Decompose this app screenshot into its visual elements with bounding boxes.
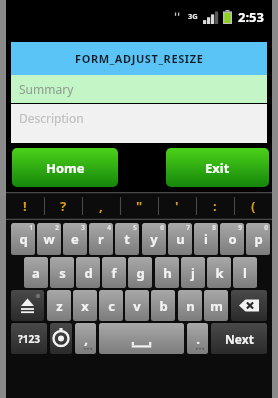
staticText: s [59, 264, 66, 282]
staticText: Home [46, 159, 85, 177]
staticText: Exit [205, 159, 230, 177]
button[interactable]: h [155, 257, 179, 288]
button[interactable]: x [73, 290, 97, 321]
staticText: a [32, 264, 40, 282]
staticText: , [99, 197, 103, 215]
button[interactable]: o [220, 223, 244, 255]
button[interactable]: c [99, 290, 123, 321]
staticText: ? [60, 197, 67, 215]
staticText: 7 [186, 223, 190, 232]
button[interactable]: k [207, 257, 231, 288]
staticText: c [108, 297, 115, 315]
button[interactable]: Exit [166, 148, 269, 187]
button[interactable]: g [128, 257, 152, 288]
staticText: 2 [55, 223, 59, 232]
staticText: i [204, 230, 208, 248]
staticText: u [176, 230, 185, 248]
staticText: 4 [107, 223, 111, 232]
button[interactable]: q [11, 223, 35, 255]
staticText: Description [19, 110, 84, 126]
staticText: 2:53 [238, 8, 264, 26]
button[interactable]: f [102, 257, 126, 288]
staticText: 5 [133, 223, 137, 232]
staticText: h [163, 264, 172, 282]
button[interactable]: e [63, 223, 87, 255]
staticText: l [243, 264, 247, 282]
staticText: o [228, 230, 237, 248]
staticText: g [136, 264, 145, 282]
staticText: 6 [160, 223, 164, 232]
button[interactable]: Summary [11, 75, 267, 103]
button[interactable]: v [125, 290, 149, 321]
staticText: 3G [188, 11, 198, 21]
button[interactable]: z [47, 290, 71, 321]
button[interactable]: Description [11, 104, 267, 143]
staticText: e [71, 230, 79, 248]
staticText: 8 [212, 223, 216, 232]
staticText: Summary [19, 81, 74, 97]
button[interactable]: p [246, 223, 270, 255]
button[interactable]: r [89, 223, 113, 255]
button[interactable]: s [50, 257, 74, 288]
button[interactable]: Space [99, 323, 184, 354]
button[interactable]: a [24, 257, 48, 288]
staticText: ( [251, 197, 256, 215]
staticText: k [215, 264, 224, 282]
staticText: ! [23, 197, 27, 215]
staticText: ?123 [18, 332, 40, 346]
button[interactable]: Backspace [231, 290, 267, 321]
button[interactable]: Home [12, 148, 118, 187]
staticText: b [159, 297, 168, 315]
button[interactable]: m [204, 290, 228, 321]
staticText: w [43, 230, 55, 248]
staticText: n [186, 297, 195, 315]
staticText: . [196, 330, 200, 348]
staticText: p [254, 230, 263, 248]
button[interactable]: ' [158, 192, 196, 220]
button[interactable]: " [120, 192, 158, 220]
staticText: t [124, 230, 130, 248]
button[interactable]: Settings [50, 323, 72, 354]
staticText: q [19, 230, 28, 248]
button[interactable]: ! [6, 192, 44, 220]
staticText: " [136, 197, 143, 215]
staticText: Next [225, 331, 254, 347]
staticText: 1 [29, 223, 33, 232]
button[interactable]: j [181, 257, 205, 288]
button[interactable]: . [187, 323, 208, 354]
staticText: z [56, 297, 63, 315]
button[interactable]: d [76, 257, 100, 288]
staticText: 0 [264, 223, 268, 232]
button[interactable]: l [233, 257, 257, 288]
staticText: v [133, 297, 141, 315]
button[interactable]: Next [211, 323, 267, 354]
button[interactable]: u [168, 223, 192, 255]
button[interactable]: , [75, 323, 96, 354]
staticText: , [84, 330, 88, 348]
button[interactable]: i [194, 223, 218, 255]
staticText: m [210, 297, 223, 315]
staticText: d [84, 264, 93, 282]
button[interactable]: Shift [11, 290, 44, 321]
button[interactable]: t [115, 223, 139, 255]
staticText: ' [175, 197, 179, 215]
staticText: j [191, 264, 195, 282]
staticText: : [213, 197, 217, 215]
staticText: x [81, 297, 89, 315]
button[interactable]: , [82, 192, 120, 220]
button[interactable]: ?123 [11, 323, 47, 354]
staticText: r [98, 230, 104, 248]
staticText: y [150, 230, 158, 248]
staticText: f [111, 264, 117, 282]
staticText: 9 [238, 223, 242, 232]
staticText: FORM_ADJUST_RESIZE [75, 51, 204, 66]
button[interactable]: FORM_ADJUST_RESIZE [11, 42, 267, 75]
button[interactable]: ? [44, 192, 82, 220]
button[interactable]: y [142, 223, 166, 255]
button[interactable]: n [178, 290, 202, 321]
button[interactable]: w [37, 223, 61, 255]
button[interactable]: b [151, 290, 175, 321]
staticText: 3 [81, 223, 85, 232]
button[interactable]: ( [234, 192, 272, 220]
button[interactable]: : [196, 192, 234, 220]
